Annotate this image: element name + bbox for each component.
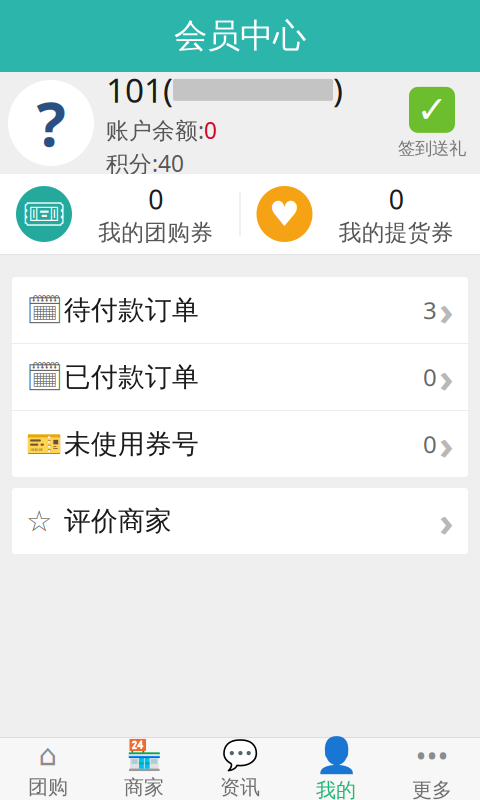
staticText: 签到送礼	[398, 138, 466, 159]
staticText: 0	[148, 181, 163, 217]
staticText: 🎟	[22, 194, 66, 234]
staticText: •••	[415, 736, 448, 775]
staticText: ⌂	[38, 739, 57, 772]
button[interactable]: •••	[384, 738, 480, 800]
staticText: 我的团购券	[98, 219, 213, 247]
button[interactable]: 🏪	[96, 738, 192, 800]
button[interactable]: ☆	[12, 488, 468, 554]
button[interactable]: 🗓	[12, 344, 468, 410]
button[interactable]: ✓	[398, 87, 480, 159]
staticText: 3	[423, 294, 437, 326]
staticText: 101(	[106, 68, 173, 112]
staticText: 我的	[316, 778, 356, 800]
button[interactable]: ♥	[240, 174, 480, 254]
staticText: 更多	[412, 778, 452, 800]
staticText: 0	[423, 428, 437, 460]
staticText: 🗓	[26, 360, 63, 394]
staticText: 👤	[314, 735, 357, 775]
staticText: 商家	[124, 775, 164, 800]
staticText: 0	[204, 115, 217, 145]
staticText: 账户余额:	[106, 115, 204, 145]
staticText: ›	[439, 494, 454, 547]
staticText: 积分:40	[106, 148, 184, 178]
staticText: 🗓	[26, 293, 63, 327]
staticText: 团购	[28, 775, 68, 799]
staticText: ›	[439, 350, 454, 403]
button[interactable]: 👤	[288, 738, 384, 800]
button[interactable]: 🗓	[12, 277, 468, 343]
staticText: ♥	[269, 194, 300, 234]
button[interactable]: ⌂	[0, 738, 96, 800]
staticText: 💬	[221, 738, 258, 772]
button[interactable]: 🎟	[0, 174, 239, 254]
staticText: 评价商家	[64, 505, 172, 537]
staticText: ✓	[416, 89, 447, 131]
staticText: 🎫	[26, 427, 63, 461]
staticText: )	[333, 68, 343, 112]
staticText: 0	[423, 361, 437, 393]
staticText: 未使用券号	[64, 428, 199, 460]
button[interactable]: 🎫	[12, 411, 468, 477]
staticText: ›	[439, 283, 454, 336]
staticText: ›	[439, 417, 454, 470]
staticText: 资讯	[220, 775, 260, 800]
staticText: ?	[36, 82, 65, 164]
button[interactable]: 💬	[192, 738, 288, 800]
staticText: 会员中心	[174, 15, 306, 56]
staticText: 已付款订单	[64, 361, 199, 393]
staticText: ☆	[26, 504, 52, 538]
staticText: 我的提货券	[339, 219, 454, 247]
staticText: 0	[389, 181, 404, 217]
staticText: 🏪	[125, 738, 162, 772]
staticText: 待付款订单	[64, 294, 199, 326]
